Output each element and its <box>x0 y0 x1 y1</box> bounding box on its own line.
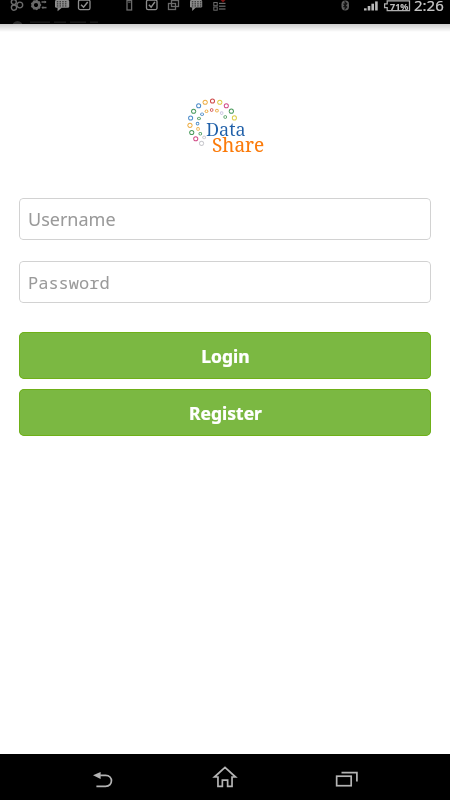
staticText: 2:26 <box>414 0 444 15</box>
staticText: 71% <box>390 0 409 12</box>
button[interactable]: Password <box>19 261 431 303</box>
button[interactable]: Recent apps <box>317 754 377 800</box>
button[interactable]: Back <box>73 754 133 800</box>
staticText: Data <box>206 117 246 142</box>
button[interactable]: Login <box>19 332 431 379</box>
staticText: Share <box>212 132 265 158</box>
button[interactable]: Home <box>195 754 255 800</box>
button[interactable]: Register <box>19 389 431 436</box>
staticText: Password <box>28 271 110 294</box>
button[interactable]: Username <box>19 198 431 240</box>
staticText: Register <box>189 401 262 425</box>
staticText: Login <box>201 344 250 368</box>
staticText: Username <box>28 207 116 232</box>
